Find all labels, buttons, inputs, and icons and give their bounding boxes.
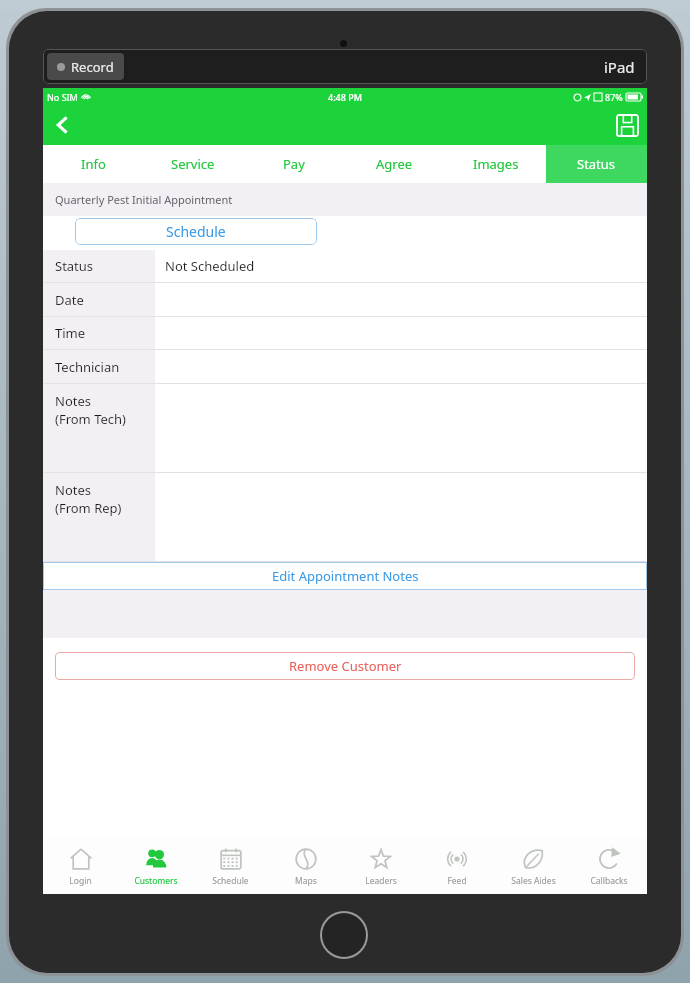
button[interactable]: Edit Appointment Notes: [43, 562, 647, 590]
staticText: Time: [55, 324, 86, 342]
staticText: Not Scheduled: [165, 257, 255, 275]
staticText: Service: [171, 155, 215, 173]
staticText: Feed: [447, 875, 467, 887]
staticText: (From Tech): [55, 410, 126, 428]
button[interactable]: Feed: [419, 838, 495, 894]
staticText: Remove Customer: [289, 657, 402, 675]
button[interactable]: Back: [43, 105, 83, 145]
staticText: Sales Aides: [511, 875, 556, 887]
button[interactable]: Service: [143, 145, 243, 183]
staticText: Pay: [283, 155, 305, 173]
button[interactable]: Leaders: [343, 838, 419, 894]
button[interactable]: Sales Aides: [495, 838, 571, 894]
staticText: Notes: [55, 392, 91, 410]
staticText: 87%: [605, 91, 623, 103]
staticText: Images: [473, 155, 519, 173]
staticText: Quarterly Pest Initial Appointment: [55, 192, 233, 207]
button[interactable]: Customers: [118, 838, 193, 894]
button[interactable]: Callbacks: [571, 838, 647, 894]
staticText: Status: [577, 155, 616, 173]
staticText: Date: [55, 291, 84, 309]
staticText: Technician: [55, 358, 120, 376]
staticText: Login: [69, 875, 92, 887]
button[interactable]: Status: [546, 145, 647, 183]
staticText: Status: [55, 257, 94, 275]
button[interactable]: Record: [47, 53, 124, 80]
staticText: Schedule: [166, 222, 226, 241]
button[interactable]: Info: [43, 145, 143, 183]
button[interactable]: Maps: [268, 838, 343, 894]
staticText: Info: [81, 155, 106, 173]
staticText: Edit Appointment Notes: [272, 567, 419, 585]
button[interactable]: Agree: [344, 145, 445, 183]
staticText: No SIM: [47, 91, 78, 103]
staticText: Schedule: [212, 875, 249, 887]
button[interactable]: Images: [445, 145, 546, 183]
staticText: Customers: [134, 875, 178, 887]
staticText: iPad: [604, 57, 635, 77]
button[interactable]: Pay: [243, 145, 344, 183]
staticText: 4:48 PM: [328, 91, 362, 103]
staticText: Callbacks: [590, 875, 628, 887]
staticText: Maps: [295, 875, 317, 887]
button[interactable]: Save: [607, 105, 647, 145]
staticText: Leaders: [365, 875, 397, 887]
staticText: (From Rep): [55, 499, 122, 517]
button[interactable]: Schedule: [193, 838, 268, 894]
button[interactable]: Home: [322, 913, 366, 957]
staticText: Agree: [376, 155, 413, 173]
button[interactable]: Schedule: [75, 218, 317, 245]
button[interactable]: Remove Customer: [55, 652, 635, 680]
staticText: Record: [71, 58, 114, 76]
staticText: Notes: [55, 481, 91, 499]
button[interactable]: Login: [43, 838, 118, 894]
